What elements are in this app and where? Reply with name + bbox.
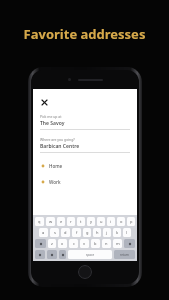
button[interactable]: Pick me up at (33, 114, 137, 130)
staticText: q (38, 219, 41, 224)
staticText: p (130, 219, 133, 224)
button[interactable]: return (114, 250, 135, 259)
staticText: h (96, 230, 99, 235)
button[interactable]: f (72, 228, 81, 237)
staticText: Barbican Centre (40, 143, 80, 150)
button[interactable]: e (57, 217, 65, 226)
staticText: r (70, 219, 72, 224)
button[interactable]: Home button (78, 265, 92, 279)
button[interactable]: i (107, 217, 115, 226)
button[interactable]: Work (33, 179, 137, 185)
staticText: z (51, 241, 53, 246)
staticText: s (54, 230, 56, 235)
staticText: y (90, 219, 93, 224)
staticText: return (120, 253, 129, 257)
button[interactable]: m (113, 239, 122, 248)
button[interactable]: space (68, 250, 112, 259)
button[interactable]: z (48, 239, 56, 248)
button[interactable]: j (103, 228, 111, 237)
button[interactable]: g (83, 228, 91, 237)
staticText: j (106, 230, 108, 235)
staticText: v (83, 241, 86, 246)
button[interactable]: w (46, 217, 55, 226)
staticText: d (64, 230, 67, 235)
staticText: Work (49, 179, 61, 185)
button[interactable]: u (97, 217, 105, 226)
button[interactable]: n (102, 239, 111, 248)
button[interactable]: x (58, 239, 67, 248)
button[interactable]: a (39, 228, 48, 237)
button[interactable]: Delete (124, 239, 135, 248)
button[interactable]: o (117, 217, 125, 226)
staticText: x (61, 241, 64, 246)
staticText: a (42, 230, 45, 235)
staticText: i (110, 219, 112, 224)
staticText: c (73, 241, 75, 246)
staticText: The Savoy (40, 120, 65, 127)
staticText: m (116, 241, 120, 246)
staticText: f (76, 230, 78, 235)
staticText: l (126, 230, 128, 235)
staticText: u (100, 219, 103, 224)
button[interactable]: b (91, 239, 100, 248)
staticText: Where are you going? (40, 137, 75, 142)
button[interactable]: Shift (35, 239, 46, 248)
button[interactable]: Close (39, 97, 49, 107)
button[interactable]: k (113, 228, 121, 237)
button[interactable]: d (61, 228, 70, 237)
staticText: w (49, 219, 53, 224)
button[interactable]: y (87, 217, 95, 226)
staticText: Home (49, 163, 63, 169)
button[interactable]: Emoji (47, 250, 57, 259)
button[interactable]: p (127, 217, 135, 226)
button[interactable]: Home (33, 163, 137, 169)
staticText: Favorite addresses (0, 25, 169, 43)
button[interactable]: h (93, 228, 101, 237)
button[interactable]: Numbers (35, 250, 45, 259)
button[interactable]: r (67, 217, 75, 226)
button[interactable]: Dictation (59, 250, 66, 259)
button[interactable]: l (123, 228, 131, 237)
staticText: k (116, 230, 119, 235)
staticText: o (120, 219, 123, 224)
staticText: e (60, 219, 63, 224)
button[interactable]: Where are you going? (33, 137, 137, 153)
staticText: t (80, 219, 82, 224)
button[interactable]: c (69, 239, 78, 248)
button[interactable]: v (80, 239, 89, 248)
staticText: b (94, 241, 97, 246)
staticText: space (86, 253, 95, 257)
button[interactable]: s (50, 228, 59, 237)
staticText: Pick me up at (40, 114, 62, 119)
button[interactable]: t (77, 217, 85, 226)
button[interactable]: q (35, 217, 44, 226)
staticText: n (105, 241, 108, 246)
staticText: g (86, 230, 89, 235)
